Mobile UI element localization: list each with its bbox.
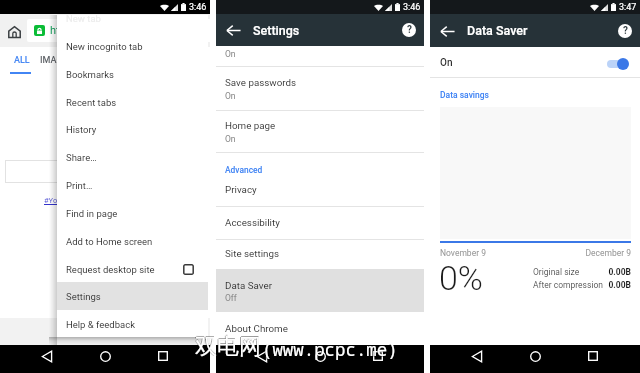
button[interactable]: ALL (14, 55, 30, 66)
staticText: Settings (66, 291, 101, 302)
staticText: Advanced (225, 165, 263, 175)
staticText: After compression (533, 280, 603, 290)
button[interactable]: Help (616, 22, 634, 40)
button[interactable]: Bookmarks (57, 60, 208, 88)
staticText: ? (407, 24, 412, 36)
button[interactable]: Back (251, 345, 273, 367)
staticText: 双电网 (194, 333, 260, 361)
button[interactable]: Recent tabs (57, 88, 208, 116)
staticText: On (225, 49, 236, 59)
staticText: About Chrome (225, 323, 288, 334)
staticText: 0.00B (440, 267, 631, 277)
staticText: (www.pcpc.me) (262, 337, 398, 361)
staticText: Privacy (225, 184, 257, 195)
staticText: 双电网 (195, 332, 261, 360)
staticText: Add to Home screen (66, 236, 153, 247)
button[interactable]: Recent apps (367, 345, 389, 367)
staticText: November 9 (440, 248, 486, 258)
staticText: Data Saver (225, 280, 272, 291)
button[interactable]: Find in page (57, 199, 208, 227)
staticText: 3:46 (403, 2, 421, 13)
staticText: Share… (66, 152, 97, 163)
button[interactable]: History (57, 115, 208, 143)
staticText: IMAGES (40, 55, 74, 66)
staticText: New incognito tab (66, 41, 143, 52)
staticText: December 9 (440, 248, 631, 258)
button[interactable]: Back (466, 345, 488, 367)
staticText: On (225, 91, 236, 101)
staticText: New tab (66, 15, 101, 24)
button[interactable]: Navigate up (437, 21, 457, 41)
button[interactable]: Add to Home screen (57, 227, 208, 255)
button[interactable]: https (27, 19, 237, 42)
button[interactable]: IMAGES (40, 55, 74, 66)
button[interactable]: Help (400, 21, 418, 39)
button[interactable]: Home (309, 345, 331, 367)
button[interactable]: Home (4, 22, 24, 42)
button[interactable]: New tab (57, 15, 208, 32)
staticText: 3:46 (189, 2, 207, 13)
staticText: Help & feedback (66, 319, 135, 330)
staticText: Site settings (225, 248, 280, 259)
button[interactable]: Help & feedback (57, 310, 208, 337)
staticText: (www.pcpc.me) (261, 338, 397, 362)
staticText: Settings (253, 23, 300, 38)
staticText: On (440, 57, 453, 69)
staticText: Request desktop site (66, 264, 155, 275)
staticText: ? (623, 25, 628, 37)
button[interactable]: Recent apps (152, 345, 174, 367)
button[interactable]: Recent apps (582, 345, 604, 367)
staticText: ALL (14, 55, 30, 66)
staticText: Save passwords (225, 77, 297, 88)
button[interactable] (216, 269, 424, 312)
button[interactable]: Print… (57, 171, 208, 199)
button[interactable]: On (430, 49, 640, 77)
staticText: Off (225, 293, 237, 303)
button[interactable]: Request desktop site (57, 255, 208, 283)
staticText: Data Saver (467, 23, 528, 38)
staticText: 3:47 (619, 2, 637, 13)
staticText: Bookmarks (66, 69, 115, 80)
staticText: Find in page (66, 208, 118, 219)
staticText: 0.00B (440, 280, 631, 290)
staticText: Accessibility (225, 217, 280, 228)
staticText: 0% (439, 258, 483, 298)
staticText: History (66, 124, 97, 135)
button[interactable]: New incognito tab (57, 32, 208, 60)
staticText: https (50, 24, 76, 37)
staticText: Original size (533, 267, 580, 277)
staticText: Print… (66, 180, 93, 191)
staticText: Data savings (440, 90, 489, 100)
staticText: On (225, 134, 236, 144)
button[interactable]: Back (36, 345, 58, 367)
button[interactable]: Share… (57, 143, 208, 171)
button[interactable]: Settings (57, 282, 208, 310)
staticText: Recent tabs (66, 97, 117, 108)
staticText: 双电网 (195, 333, 261, 361)
button[interactable]: Navigate up (223, 20, 243, 40)
button[interactable]: Home (524, 345, 546, 367)
staticText: #Yo (44, 196, 58, 205)
staticText: Home page (225, 120, 276, 131)
button[interactable]: Home (94, 345, 116, 367)
